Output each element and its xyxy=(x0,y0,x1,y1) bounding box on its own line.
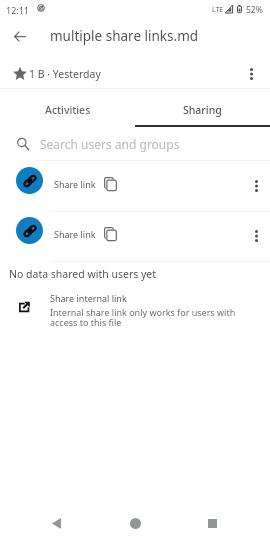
staticText: Sharing xyxy=(183,103,222,117)
staticText: Share link xyxy=(54,228,96,240)
staticText: LTE xyxy=(212,5,223,14)
staticText: No data shared with users yet xyxy=(9,267,157,281)
button[interactable]: Activities xyxy=(0,89,135,127)
button[interactable]: Home xyxy=(115,503,155,540)
button[interactable]: Share link options xyxy=(241,221,270,251)
button[interactable]: Share link options xyxy=(241,171,270,201)
button[interactable]: Share internal link xyxy=(0,289,270,329)
staticText: 12:11 xyxy=(6,4,30,16)
staticText: multiple share links.md xyxy=(50,27,199,45)
staticText: Search users and groups xyxy=(40,136,180,152)
button[interactable]: Share link xyxy=(0,161,270,211)
staticText: Share link xyxy=(54,178,96,190)
staticText: Internal share link only works for users… xyxy=(50,306,242,329)
button[interactable]: Copy link xyxy=(100,223,121,244)
staticText: 1 B · Yesterday xyxy=(29,67,101,81)
button[interactable]: Sharing xyxy=(135,89,270,127)
staticText: Activities xyxy=(45,103,91,117)
staticText: Share internal link xyxy=(50,292,127,304)
button[interactable]: Recent apps xyxy=(192,503,232,540)
button[interactable]: Search users and groups xyxy=(0,127,270,161)
button[interactable]: Back xyxy=(36,503,76,540)
staticText: 52% xyxy=(246,4,263,16)
button[interactable]: Navigate up xyxy=(4,21,35,52)
button[interactable]: Share link xyxy=(0,211,270,261)
button[interactable]: Copy link xyxy=(100,173,121,194)
button[interactable]: More options xyxy=(237,59,266,88)
